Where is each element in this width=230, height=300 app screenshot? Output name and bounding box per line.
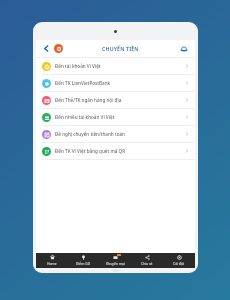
button[interactable]: Khuyến mại	[99, 253, 131, 268]
staticText: Điểm GD	[76, 261, 91, 266]
button[interactable]: Đến TK LienVietPostBank	[36, 75, 195, 91]
button[interactable]: Đề nghị chuyển tiền/thanh toán	[36, 126, 195, 142]
button[interactable]: Đến Thẻ/TK ngân hàng nội địa	[36, 92, 195, 108]
button[interactable]: Chia sẻ	[131, 253, 163, 268]
staticText: Đến tài khoản Ví Việt	[55, 63, 101, 69]
staticText: Khuyến mại	[106, 261, 125, 266]
staticText: Đến TK LienVietPostBank	[55, 80, 111, 86]
button[interactable]: Đến tài khoản Ví Việt	[36, 58, 195, 74]
staticText: Đến TK Ví Việt bằng quét mã QR	[55, 148, 126, 154]
staticText: Đến nhiều tài khoản Ví Việt	[55, 114, 115, 120]
staticText: Đề nghị chuyển tiền/thanh toán	[55, 131, 125, 137]
button[interactable]: Điểm GD	[67, 253, 99, 268]
button[interactable]: Cài đặt	[163, 253, 195, 268]
staticText: CHUYỂN TIỀN	[102, 45, 139, 52]
button[interactable]: Notifications	[178, 43, 190, 55]
staticText: Cài đặt	[173, 261, 185, 266]
button[interactable]: Đến TK Ví Việt bằng quét mã QR	[36, 143, 195, 159]
staticText: Chia sẻ	[141, 261, 153, 266]
staticText: Đến Thẻ/TK ngân hàng nội địa	[55, 97, 122, 103]
staticText: Home	[47, 261, 57, 266]
button[interactable]: Home	[36, 253, 67, 268]
button[interactable]: Back	[41, 43, 52, 54]
button[interactable]: Đến nhiều tài khoản Ví Việt	[36, 109, 195, 125]
button[interactable]: Vi Viet logo	[54, 44, 63, 53]
